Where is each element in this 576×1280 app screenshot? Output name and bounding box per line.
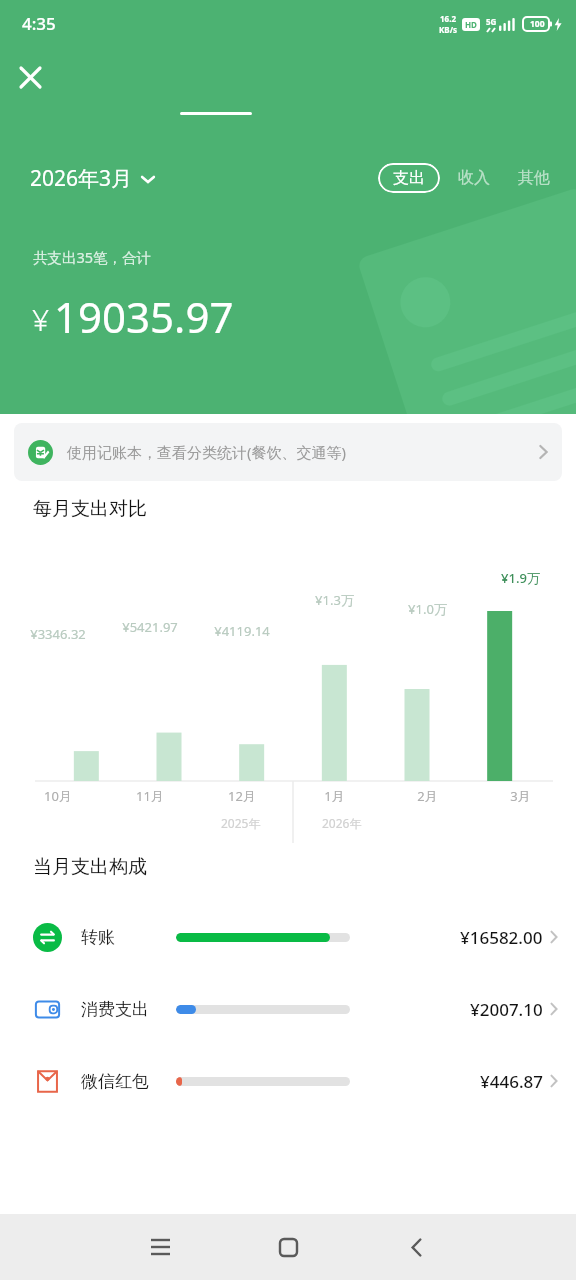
- staticText: 其他: [518, 168, 550, 188]
- button[interactable]: 2026年3月: [30, 164, 155, 193]
- staticText: ¥3346.32: [30, 625, 86, 643]
- staticText: 10月: [44, 787, 72, 805]
- button[interactable]: Close: [8, 55, 52, 99]
- button[interactable]: 微信红包: [0, 1045, 576, 1117]
- button[interactable]: Menu: [130, 1217, 190, 1277]
- staticText: 2026年3月: [30, 164, 133, 193]
- staticText: 使用记账本，查看分类统计(餐饮、交通等): [67, 442, 347, 462]
- staticText: 100: [530, 18, 545, 30]
- staticText: ¥1.9万: [501, 569, 540, 587]
- staticText: 4:35: [22, 12, 56, 35]
- staticText: ¥: [32, 299, 50, 340]
- staticText: 2月: [417, 787, 438, 805]
- button[interactable]: 消费支出: [0, 973, 576, 1045]
- button[interactable]: 转账: [0, 901, 576, 973]
- staticText: 1月: [324, 787, 345, 805]
- staticText: 19035.97: [54, 288, 234, 345]
- button[interactable]: Back: [386, 1217, 446, 1277]
- staticText: 2025年: [221, 815, 261, 831]
- staticText: ¥2007.10: [470, 998, 543, 1021]
- staticText: 16.2: [440, 13, 456, 24]
- staticText: HD: [465, 19, 477, 30]
- button[interactable]: 其他: [508, 162, 576, 194]
- staticText: KB/s: [439, 24, 457, 35]
- button[interactable]: 使用记账本，查看分类统计(餐饮、交通等): [14, 423, 562, 481]
- staticText: ¥446.87: [480, 1070, 543, 1093]
- button[interactable]: 支出: [378, 163, 440, 193]
- staticText: ¥16582.00: [460, 926, 543, 949]
- staticText: 2026年: [322, 815, 362, 831]
- staticText: 5G: [486, 16, 497, 27]
- staticText: 11月: [136, 787, 164, 805]
- staticText: 微信红包: [81, 1071, 176, 1092]
- staticText: 消费支出: [81, 999, 176, 1020]
- staticText: 共支出35笔，合计: [33, 247, 152, 267]
- staticText: 每月支出对比: [33, 497, 147, 521]
- staticText: 转账: [81, 927, 176, 948]
- staticText: ¥1.3万: [315, 591, 354, 609]
- staticText: ¥1.0万: [408, 600, 447, 618]
- staticText: 收入: [458, 168, 490, 188]
- staticText: 3月: [510, 787, 531, 805]
- staticText: 12月: [228, 787, 256, 805]
- staticText: ¥4119.14: [214, 622, 270, 640]
- staticText: ¥5421.97: [122, 618, 178, 636]
- button[interactable]: Home: [258, 1217, 318, 1277]
- staticText: 支出: [393, 168, 425, 188]
- button[interactable]: 收入: [440, 162, 508, 194]
- staticText: 当月支出构成: [33, 855, 147, 879]
